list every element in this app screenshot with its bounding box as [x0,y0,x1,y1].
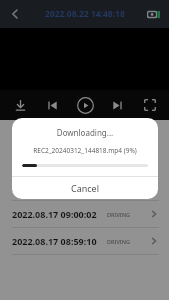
staticText: REC2_20240312_144818.mp4 (9%) [12,146,158,155]
staticText: DRIVING [107,211,131,218]
button[interactable]: 2022.08.17 08:59:10 [0,228,169,255]
button[interactable]: Previous [39,92,65,118]
button[interactable]: 2022.08.17 09:00:02 [0,201,169,228]
button[interactable]: Back [4,3,26,25]
staticText: DRIVING [107,238,131,245]
button[interactable]: Play [72,92,98,118]
button[interactable]: Download [7,92,33,118]
staticText: Downloading... [12,127,158,138]
staticText: 2022.08.22 14:48:18 [45,8,125,20]
button[interactable]: Next [104,92,130,118]
button[interactable]: Fullscreen [137,92,163,118]
button[interactable]: 2022.08.22 14:47:26 [0,120,169,147]
staticText: 2022.08.22 14:46:41 [12,154,97,166]
button[interactable]: 2022.08.17 09:01:00 [0,174,169,201]
button[interactable]: 2022.08.22 14:46:41 [0,147,169,174]
staticText: DRIVING [107,130,131,137]
staticText: 2022.08.17 09:00:02 [12,208,97,220]
staticText: 2022.08.17 08:59:10 [12,235,97,247]
staticText: Cancel [71,182,100,194]
button[interactable]: Camera [143,4,163,24]
staticText: 2022.08.17 09:01:00 [12,181,97,193]
button[interactable]: Cancel [12,177,158,199]
staticText: 2022.08.22 14:47:26 [12,127,97,139]
